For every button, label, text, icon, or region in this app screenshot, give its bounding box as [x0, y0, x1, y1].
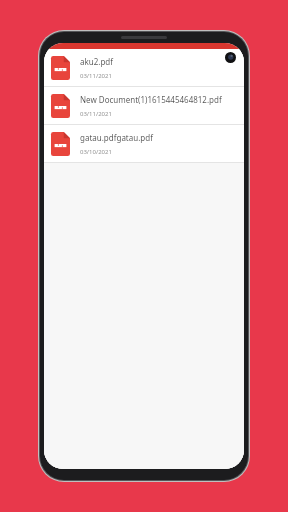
- staticText: 03/11/2021: [80, 110, 112, 118]
- button[interactable]: PDF file: [44, 125, 244, 162]
- other: PDF file: [51, 56, 70, 80]
- staticText: aku2.pdf: [80, 56, 114, 67]
- button[interactable]: PDF file: [44, 49, 244, 86]
- staticText: New Document(1)1615445464812.pdf: [80, 94, 222, 105]
- other: PDF file: [51, 94, 70, 118]
- staticText: gatau.pdfgatau.pdf: [80, 132, 153, 143]
- button[interactable]: PDF file: [44, 87, 244, 124]
- other: PDF file: [51, 132, 70, 156]
- staticText: 03/10/2021: [80, 148, 112, 156]
- staticText: 03/11/2021: [80, 72, 112, 80]
